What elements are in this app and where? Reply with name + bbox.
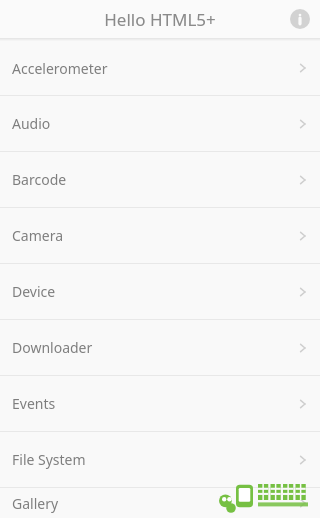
staticText: Camera [12,226,64,245]
staticText: Accelerometer [12,59,108,78]
staticText: Hello HTML5+ [104,8,216,31]
button[interactable]: Events [0,376,320,431]
button[interactable]: Device [0,264,320,319]
button[interactable]: File System [0,432,320,487]
button[interactable]: Downloader [0,320,320,375]
staticText: Events [12,394,56,413]
button[interactable]: Audio [0,96,320,151]
button[interactable]: Gallery [0,488,320,518]
staticText: Downloader [12,338,93,357]
staticText: Gallery [12,494,59,513]
staticText: File System [12,450,86,469]
button[interactable]: Camera [0,208,320,263]
staticText: Barcode [12,170,67,189]
button[interactable]: Accelerometer [0,41,320,95]
button[interactable]: Barcode [0,152,320,207]
button[interactable]: Info [280,0,320,38]
staticText: Device [12,282,56,301]
staticText: Audio [12,114,51,133]
